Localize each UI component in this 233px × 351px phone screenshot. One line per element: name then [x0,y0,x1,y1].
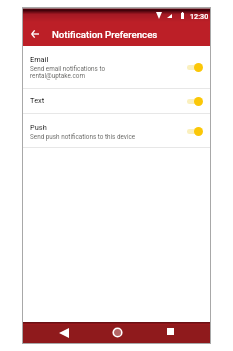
button[interactable]: Toggle notifications [184,124,204,138]
button[interactable]: Back [26,25,44,43]
button[interactable]: Recent apps [157,322,183,343]
button[interactable]: Toggle notifications [184,94,204,108]
staticText: Notification Preferences [52,29,158,40]
staticText: 12:30 [190,12,209,20]
staticText: Email [30,55,49,64]
staticText: Send email notifications to rental@uptak… [30,65,106,79]
staticText: Send push notifications to this device [30,133,136,140]
staticText: Push [30,123,47,132]
staticText: Text [30,96,45,105]
button[interactable]: Back [51,322,77,343]
button[interactable]: Home [104,322,130,343]
button[interactable]: Text [23,89,210,113]
button[interactable]: Email [23,46,210,88]
button[interactable]: Toggle notifications [184,60,204,74]
button[interactable]: Push [23,114,210,147]
